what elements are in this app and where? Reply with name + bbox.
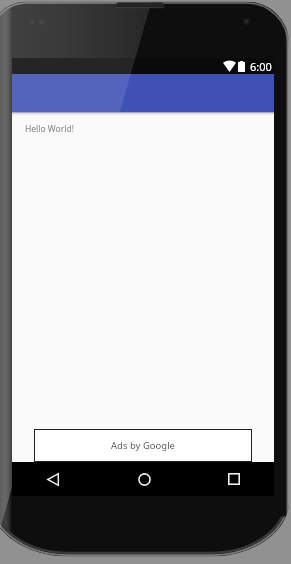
button[interactable]: Home	[127, 462, 161, 496]
button[interactable]: Back	[36, 462, 70, 496]
staticText: Hello World!	[25, 123, 74, 135]
staticText: 6:00	[250, 59, 272, 74]
staticText: Ads by Google	[111, 439, 175, 452]
button[interactable]: Recents	[217, 462, 251, 496]
button[interactable]: Ads by Google	[35, 430, 251, 461]
